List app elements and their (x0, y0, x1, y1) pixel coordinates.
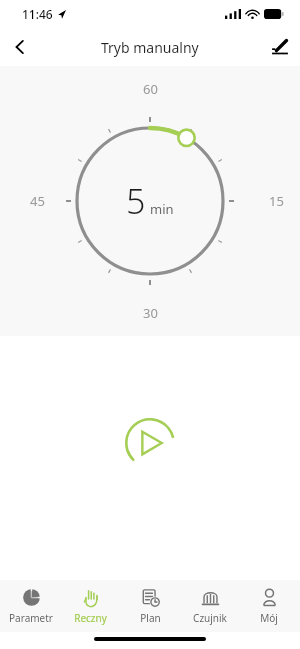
staticText: Reczny (74, 611, 107, 625)
staticText: Plan (140, 611, 161, 625)
button[interactable]: Start (123, 416, 177, 470)
staticText: Tryb manualny (101, 38, 199, 57)
staticText: 45 (30, 192, 45, 210)
staticText: min (150, 200, 174, 218)
staticText: 60 (143, 80, 158, 98)
button[interactable]: Edit (260, 28, 300, 66)
button[interactable]: Plan (121, 588, 179, 625)
staticText: 5 (126, 178, 146, 224)
button[interactable]: Parametr (2, 588, 60, 625)
staticText: 30 (143, 304, 158, 322)
staticText: Mój (260, 611, 278, 625)
staticText: 15 (269, 192, 284, 210)
button[interactable]: Reczny (61, 588, 119, 625)
button[interactable]: Mój (240, 588, 298, 625)
button[interactable]: Czujnik (181, 588, 239, 625)
staticText: Parametr (9, 611, 53, 625)
staticText: Czujnik (193, 611, 227, 625)
button[interactable]: Back (0, 28, 40, 66)
staticText: 11:46 (22, 6, 53, 22)
